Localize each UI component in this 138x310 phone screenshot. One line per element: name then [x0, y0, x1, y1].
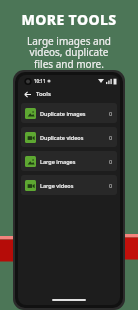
- staticText: Duplicate images: [40, 110, 86, 117]
- button[interactable]: Duplicate images: [21, 103, 117, 123]
- staticText: 0: [109, 110, 113, 117]
- staticText: 0: [109, 182, 113, 189]
- staticText: Large images and videos, duplicate files…: [27, 34, 111, 71]
- staticText: 0: [109, 134, 113, 141]
- staticText: MORE TOOLS: [21, 10, 117, 29]
- button[interactable]: Large images: [21, 151, 117, 171]
- button[interactable]: Back: [21, 88, 33, 100]
- staticText: Large videos: [40, 182, 74, 189]
- button[interactable]: Duplicate videos: [21, 127, 117, 147]
- button[interactable]: Large videos: [21, 175, 117, 195]
- staticText: Large images: [40, 158, 76, 165]
- staticText: Tools: [36, 90, 51, 98]
- staticText: 10:11: [34, 78, 46, 84]
- staticText: 0: [109, 158, 113, 165]
- staticText: Duplicate videos: [40, 134, 84, 141]
